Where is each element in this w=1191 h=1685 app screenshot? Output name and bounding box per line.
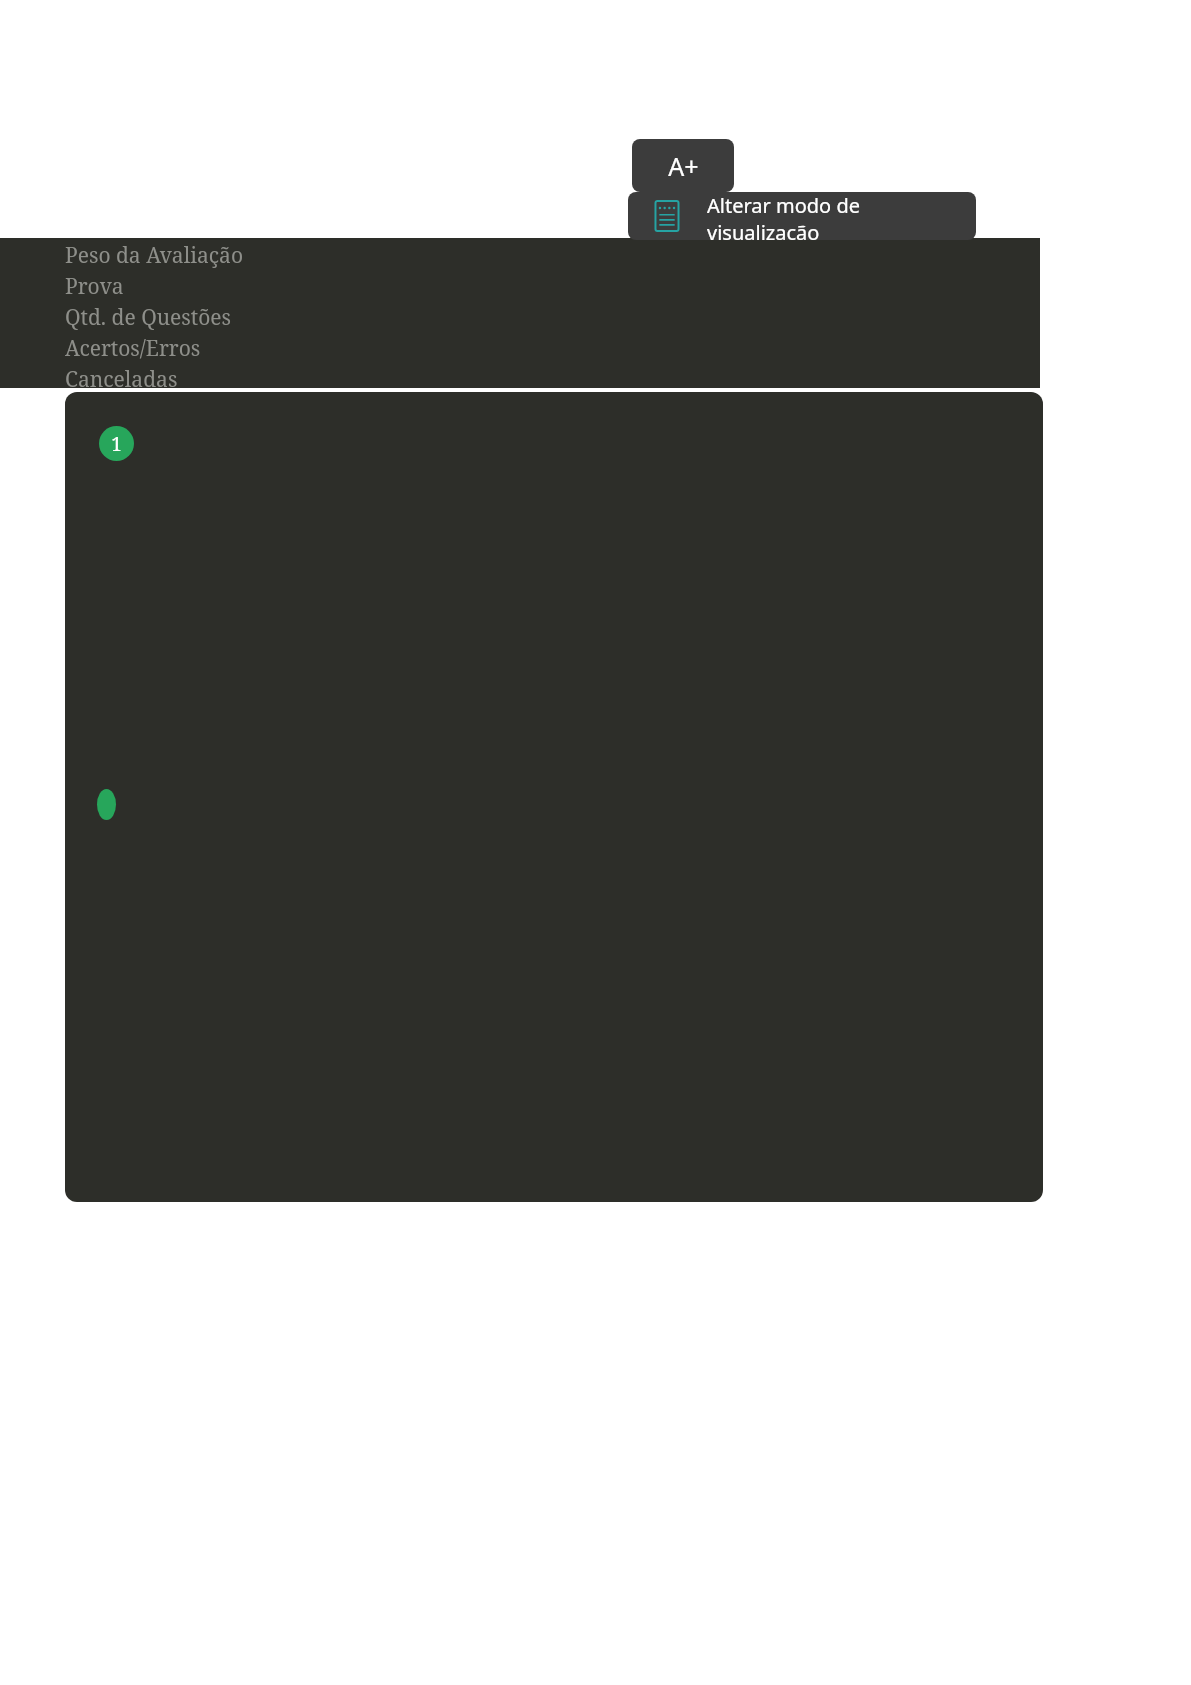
- other: Alterar modo de visualização: [651, 200, 683, 232]
- staticText: Acertos/Erros: [65, 334, 201, 363]
- button[interactable]: 1: [65, 392, 1043, 1202]
- staticText: A+: [668, 149, 699, 183]
- button[interactable]: 1: [99, 426, 134, 461]
- staticText: 1: [111, 431, 122, 457]
- staticText: Alterar modo de visualização: [707, 192, 976, 240]
- staticText: Prova: [65, 272, 124, 301]
- button[interactable]: A+: [632, 139, 734, 192]
- staticText: Canceladas: [65, 365, 178, 389]
- staticText: Qtd. de Questões: [65, 303, 232, 332]
- staticText: Peso da Avaliação: [65, 241, 243, 270]
- button[interactable]: Alterar modo de visualização: [628, 192, 976, 240]
